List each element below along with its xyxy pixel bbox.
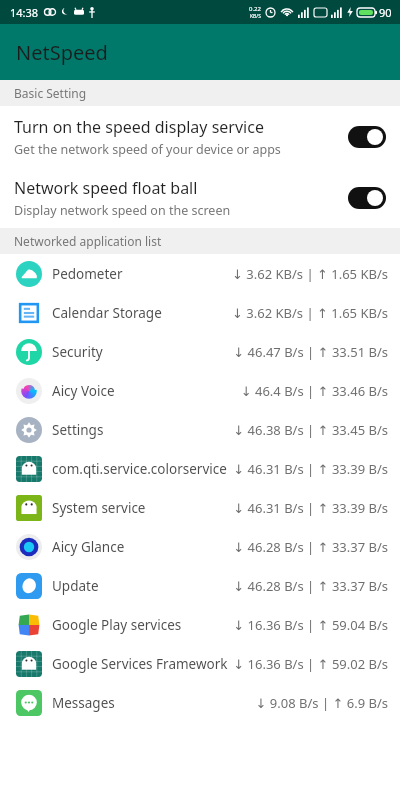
staticText: Display network speed on the screen: [14, 202, 231, 219]
staticText: Calendar Storage: [52, 304, 162, 322]
staticText: Update: [52, 577, 99, 595]
staticText: Pedometer: [52, 265, 123, 283]
button[interactable]: Network speed float ball: [0, 167, 400, 228]
staticText: Messages: [52, 694, 115, 712]
staticText: ↓ 46.28 B/s | ↑ 33.37 B/s: [233, 538, 388, 556]
staticText: KB/S: [250, 13, 261, 20]
staticText: Settings: [52, 421, 104, 439]
button[interactable]: Google Services Framework: [0, 644, 400, 683]
button[interactable]: Calendar Storage: [0, 293, 400, 332]
staticText: ↓ 46.4 B/s | ↑ 33.46 B/s: [240, 382, 388, 400]
staticText: Network speed float ball: [14, 177, 198, 199]
staticText: ↓ 16.36 B/s | ↑ 59.04 B/s: [233, 616, 388, 634]
staticText: ↓ 9.08 B/s | ↑ 6.9 B/s: [255, 694, 388, 712]
staticText: Aicy Glance: [52, 538, 125, 556]
button[interactable]: System service: [0, 488, 400, 527]
staticText: ↓ 46.31 B/s | ↑ 33.39 B/s: [233, 499, 388, 517]
staticText: ↓ 3.62 KB/s | ↑ 1.65 KB/s: [232, 304, 388, 322]
button[interactable]: Turn on the speed display service: [0, 106, 400, 167]
staticText: Security: [52, 343, 103, 361]
button[interactable]: Toggle Turn on the speed display service: [348, 126, 386, 148]
staticText: Google Play services: [52, 616, 182, 634]
staticText: ↓ 46.38 B/s | ↑ 33.45 B/s: [233, 421, 388, 439]
button[interactable]: Security: [0, 332, 400, 371]
staticText: ↓ 16.36 B/s | ↑ 59.02 B/s: [233, 655, 388, 673]
staticText: Aicy Voice: [52, 382, 115, 400]
staticText: ↓ 46.31 B/s | ↑ 33.39 B/s: [233, 460, 388, 478]
staticText: Basic Setting: [14, 85, 87, 101]
staticText: 0.22: [249, 5, 261, 13]
button[interactable]: com.qti.service.colorservice: [0, 449, 400, 488]
staticText: 14:38: [10, 5, 39, 20]
button[interactable]: Pedometer: [0, 254, 400, 293]
staticText: Networked application list: [14, 233, 162, 249]
staticText: Google Services Framework: [52, 655, 228, 673]
button[interactable]: Google Play services: [0, 605, 400, 644]
button[interactable]: Messages: [0, 683, 400, 722]
staticText: com.qti.service.colorservice: [52, 460, 227, 478]
staticText: Turn on the speed display service: [14, 116, 264, 138]
staticText: ↓ 46.28 B/s | ↑ 33.37 B/s: [233, 577, 388, 595]
button[interactable]: Aicy Voice: [0, 371, 400, 410]
button[interactable]: Aicy Glance: [0, 527, 400, 566]
staticText: 90: [379, 5, 392, 20]
button[interactable]: Toggle Network speed float ball: [348, 187, 386, 209]
staticText: ↓ 46.47 B/s | ↑ 33.51 B/s: [233, 343, 388, 361]
staticText: Get the network speed of your device or …: [14, 141, 281, 158]
staticText: System service: [52, 499, 146, 517]
button[interactable]: Settings: [0, 410, 400, 449]
button[interactable]: Update: [0, 566, 400, 605]
staticText: ↓ 3.62 KB/s | ↑ 1.65 KB/s: [232, 265, 388, 283]
staticText: NetSpeed: [16, 39, 108, 66]
